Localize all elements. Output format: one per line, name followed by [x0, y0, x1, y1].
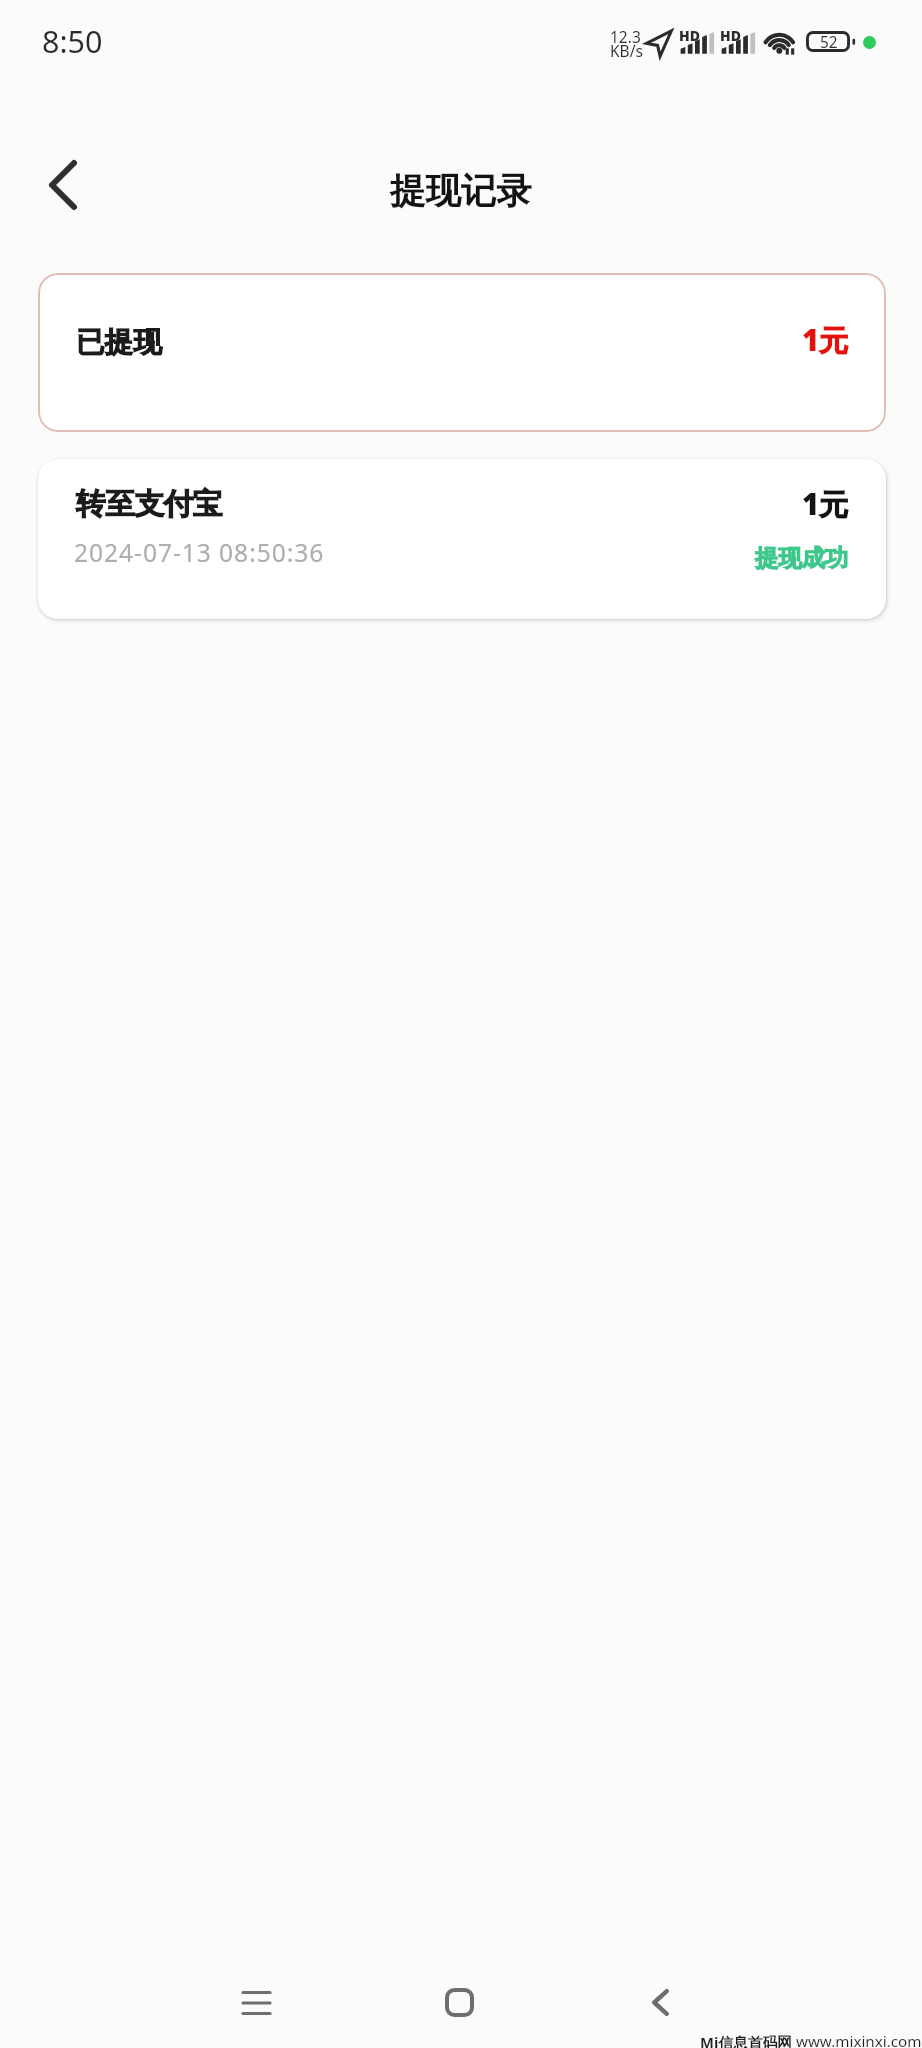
- staticText: 1元: [802, 484, 849, 524]
- button[interactable]: Back: [608, 1950, 712, 2048]
- staticText: HD: [720, 26, 741, 45]
- staticText: KB/s: [610, 40, 643, 61]
- staticText: 52: [820, 32, 838, 53]
- button[interactable]: 已提现: [38, 273, 886, 432]
- staticText: Mi信息首码网: [700, 2032, 793, 2048]
- staticText: 12.3: [610, 26, 641, 47]
- staticText: www.mixinxi.com: [796, 2031, 922, 2048]
- staticText: 2024-07-13 08:50:36: [74, 536, 325, 570]
- staticText: HD: [679, 26, 700, 45]
- button[interactable]: 转至支付宝: [38, 459, 886, 619]
- staticText: 提现成功: [755, 544, 849, 573]
- staticText: 已提现: [76, 324, 162, 360]
- staticText: 1元: [802, 320, 849, 360]
- button[interactable]: Back: [20, 142, 106, 228]
- staticText: 8:50: [42, 20, 103, 62]
- staticText: 转至支付宝: [76, 485, 222, 522]
- button[interactable]: Home: [407, 1950, 511, 2048]
- button[interactable]: Recent apps: [204, 1951, 308, 2048]
- staticText: 提现记录: [390, 169, 532, 214]
